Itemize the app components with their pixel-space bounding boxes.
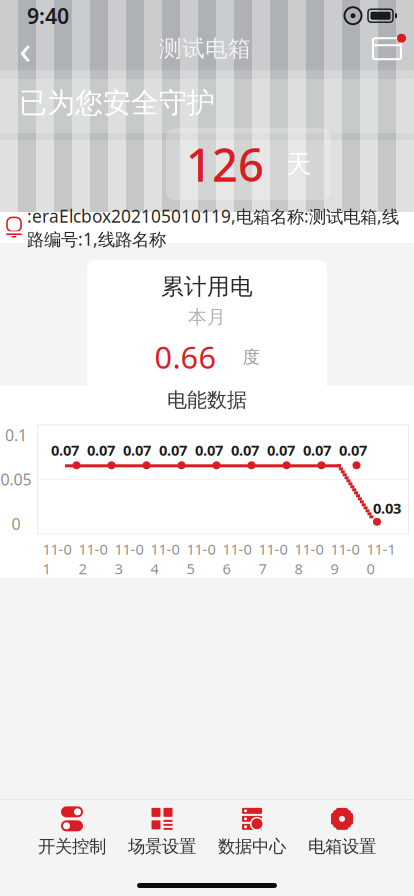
staticText: 电能数据 — [167, 388, 247, 412]
staticText: 0.07 — [51, 440, 79, 460]
staticText: 0.05 — [0, 469, 31, 490]
staticText: 11-06 — [222, 539, 251, 578]
staticText: 开关控制 — [38, 836, 106, 857]
staticText: 0 — [11, 513, 20, 534]
staticText: :eraElcbox202105010119,电箱名称:测试电箱,线路编号:1,… — [27, 204, 399, 250]
staticText: 0.07 — [339, 440, 367, 460]
button[interactable]: Messages — [365, 32, 409, 66]
button[interactable]: 场景设置 — [117, 805, 207, 857]
staticText: 0.07 — [123, 440, 151, 460]
staticText: 已为您安全守护 — [19, 86, 215, 120]
staticText: 累计用电 — [161, 273, 253, 301]
staticText: 测试电箱 — [159, 35, 251, 63]
button[interactable]: 电箱设置 — [297, 805, 387, 857]
staticText: 0.07 — [303, 440, 331, 460]
button[interactable]: 数据中心 — [207, 805, 297, 857]
staticText: 场景设置 — [128, 836, 196, 857]
staticText: 0.66 — [154, 336, 216, 377]
staticText: 11-08 — [294, 539, 323, 578]
button[interactable]: 开关控制 — [27, 805, 117, 857]
staticText: 0.07 — [231, 440, 259, 460]
staticText: 0.03 — [373, 498, 401, 518]
staticText: 电箱设置 — [308, 836, 376, 857]
staticText: 0.07 — [267, 440, 295, 460]
staticText: 11-01 — [42, 539, 71, 578]
staticText: 126 — [186, 134, 264, 194]
staticText: 0.07 — [87, 440, 115, 460]
staticText: 本月 — [188, 306, 226, 328]
staticText: 0.07 — [195, 440, 223, 460]
staticText: 9:40 — [27, 1, 69, 30]
staticText: 11-07 — [258, 539, 287, 578]
staticText: 11-02 — [78, 539, 107, 578]
button[interactable]: :eraElcbox202105010119,电箱名称:测试电箱,线路编号:1,… — [0, 212, 414, 243]
button[interactable]: Back — [5, 32, 45, 66]
staticText: 11-04 — [150, 539, 179, 578]
staticText: 0.1 — [5, 424, 27, 445]
staticText: 0.07 — [159, 440, 187, 460]
staticText: 11-05 — [186, 539, 215, 578]
staticText: 天 — [286, 149, 311, 180]
staticText: 11-09 — [330, 539, 359, 578]
staticText: 数据中心 — [218, 836, 286, 857]
staticText: 11-10 — [366, 539, 395, 578]
staticText: 11-03 — [114, 539, 143, 578]
staticText: 度 — [242, 346, 259, 367]
staticText: ‹ — [19, 22, 31, 75]
